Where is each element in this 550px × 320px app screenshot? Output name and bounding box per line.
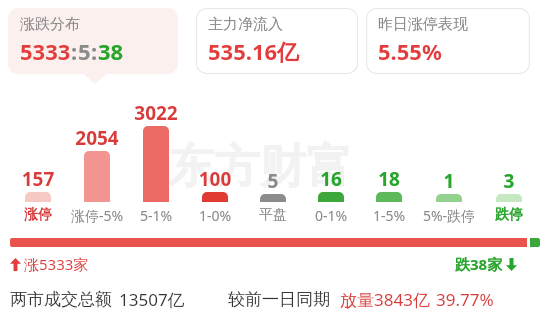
button[interactable] xyxy=(436,194,462,202)
staticText: 100 xyxy=(185,166,245,192)
staticText: 跌停 xyxy=(469,206,549,224)
button[interactable] xyxy=(318,192,344,202)
staticText: 主力净流入 xyxy=(208,15,283,34)
button[interactable]: 涨停-5% xyxy=(57,206,137,225)
staticText: 涨跌分布 xyxy=(20,15,80,34)
staticText: 东方财富 xyxy=(168,138,352,196)
staticText: 两市成交总额 xyxy=(10,289,112,310)
staticText: 昨日涨停表现 xyxy=(378,15,468,34)
staticText: 5333 xyxy=(20,36,71,66)
button[interactable] xyxy=(202,192,228,202)
staticText: 157 xyxy=(8,166,68,192)
staticText: 平盘 xyxy=(233,206,313,224)
button[interactable]: 1-0% xyxy=(175,206,255,225)
button[interactable] xyxy=(496,194,522,202)
other: Up xyxy=(10,258,21,271)
staticText: 13507亿 xyxy=(119,288,185,311)
staticText: 1-5% xyxy=(349,206,429,225)
staticText: 2054 xyxy=(67,125,127,151)
button[interactable] xyxy=(84,151,110,202)
button[interactable] xyxy=(376,192,402,202)
button[interactable]: 5-1% xyxy=(116,206,196,225)
staticText: 0-1% xyxy=(291,206,371,225)
staticText: : xyxy=(91,36,98,66)
staticText: 5 xyxy=(78,36,91,66)
staticText: 跌38家 xyxy=(455,254,503,274)
button[interactable]: 0-1% xyxy=(291,206,371,225)
staticText: 38 xyxy=(98,36,124,66)
staticText: 3022 xyxy=(126,100,186,126)
button[interactable]: 涨跌分布 xyxy=(8,8,178,74)
button[interactable] xyxy=(25,192,51,202)
staticText: 39.77% xyxy=(436,288,494,311)
staticText: 3 xyxy=(479,168,539,194)
staticText: 5-1% xyxy=(116,206,196,225)
button[interactable]: 昨日涨停表现 xyxy=(366,8,530,74)
staticText: 5%-跌停 xyxy=(409,206,489,225)
button[interactable]: 涨停 xyxy=(0,206,78,224)
staticText: 1-0% xyxy=(175,206,255,225)
other: Down xyxy=(506,258,517,271)
button[interactable]: 1-5% xyxy=(349,206,429,225)
button[interactable]: 5%-跌停 xyxy=(409,206,489,225)
staticText: 涨停 xyxy=(0,206,78,224)
staticText: 16 xyxy=(301,166,361,192)
staticText: 5 xyxy=(243,168,303,194)
staticText: 1 xyxy=(419,168,479,194)
staticText: 535.16亿 xyxy=(208,36,300,66)
staticText: 涨5333家 xyxy=(24,254,89,274)
staticText: 5.55% xyxy=(378,36,442,66)
staticText: 放量3843亿 xyxy=(340,288,430,311)
button[interactable] xyxy=(143,126,169,202)
button[interactable]: 主力净流入 xyxy=(196,8,358,74)
staticText: 涨停-5% xyxy=(57,206,137,225)
staticText: 18 xyxy=(359,166,419,192)
staticText: 较前一日同期 xyxy=(228,289,330,310)
button[interactable] xyxy=(260,194,286,202)
button[interactable]: 平盘 xyxy=(233,206,313,224)
button[interactable]: 跌停 xyxy=(469,206,549,224)
staticText: : xyxy=(71,36,78,66)
